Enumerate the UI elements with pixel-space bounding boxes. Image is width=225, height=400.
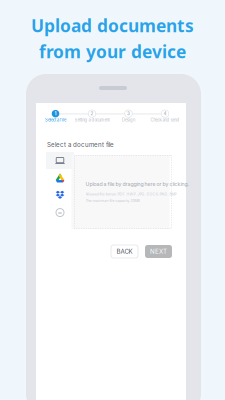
staticText: from your device (39, 40, 186, 63)
staticText: 4 (163, 111, 166, 116)
staticText: Setting a document (74, 117, 109, 122)
staticText: NEXT (150, 248, 167, 255)
button[interactable]: BACK (111, 245, 138, 258)
staticText: The maximum file capacity 20MB (85, 198, 139, 203)
button[interactable]: NEXT (145, 245, 172, 258)
staticText: BACK (116, 248, 132, 255)
button[interactable]: Google Drive (46, 169, 74, 187)
staticText: 3 (127, 111, 130, 116)
staticText: Select a file (45, 117, 66, 122)
button[interactable]: Other storage (46, 204, 74, 221)
staticText: Select a document file (47, 141, 114, 148)
staticText: Design (122, 117, 135, 122)
staticText: 2 (90, 111, 93, 116)
button[interactable]: This device (46, 152, 74, 169)
staticText: Upload documents (31, 14, 194, 37)
staticText: Check and send (150, 117, 179, 122)
staticText: 1 (54, 111, 56, 116)
staticText: Allowed file format: PDF, HWP, JPG, DOCX… (85, 192, 176, 196)
staticText: Upload a file by dragging here or by cli… (85, 181, 188, 187)
button[interactable]: Dropbox (46, 187, 74, 204)
